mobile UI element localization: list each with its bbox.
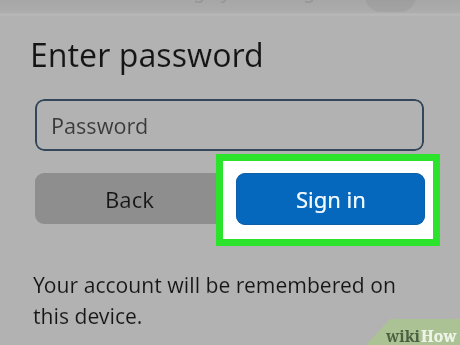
staticText: Enter password (30, 33, 264, 77)
staticText: Back (105, 184, 154, 214)
button[interactable]: Account (365, 0, 416, 12)
staticText: Your account will be remembered on this … (33, 271, 433, 330)
button[interactable]: Sign in (236, 173, 425, 225)
button[interactable]: Back (35, 173, 224, 224)
staticText: Manage your Google (143, 0, 331, 4)
staticText: How (421, 325, 457, 345)
button[interactable]: Password (35, 99, 424, 151)
staticText: Sign in (296, 184, 366, 214)
staticText: Password (51, 111, 149, 140)
staticText: wiki (386, 325, 421, 345)
